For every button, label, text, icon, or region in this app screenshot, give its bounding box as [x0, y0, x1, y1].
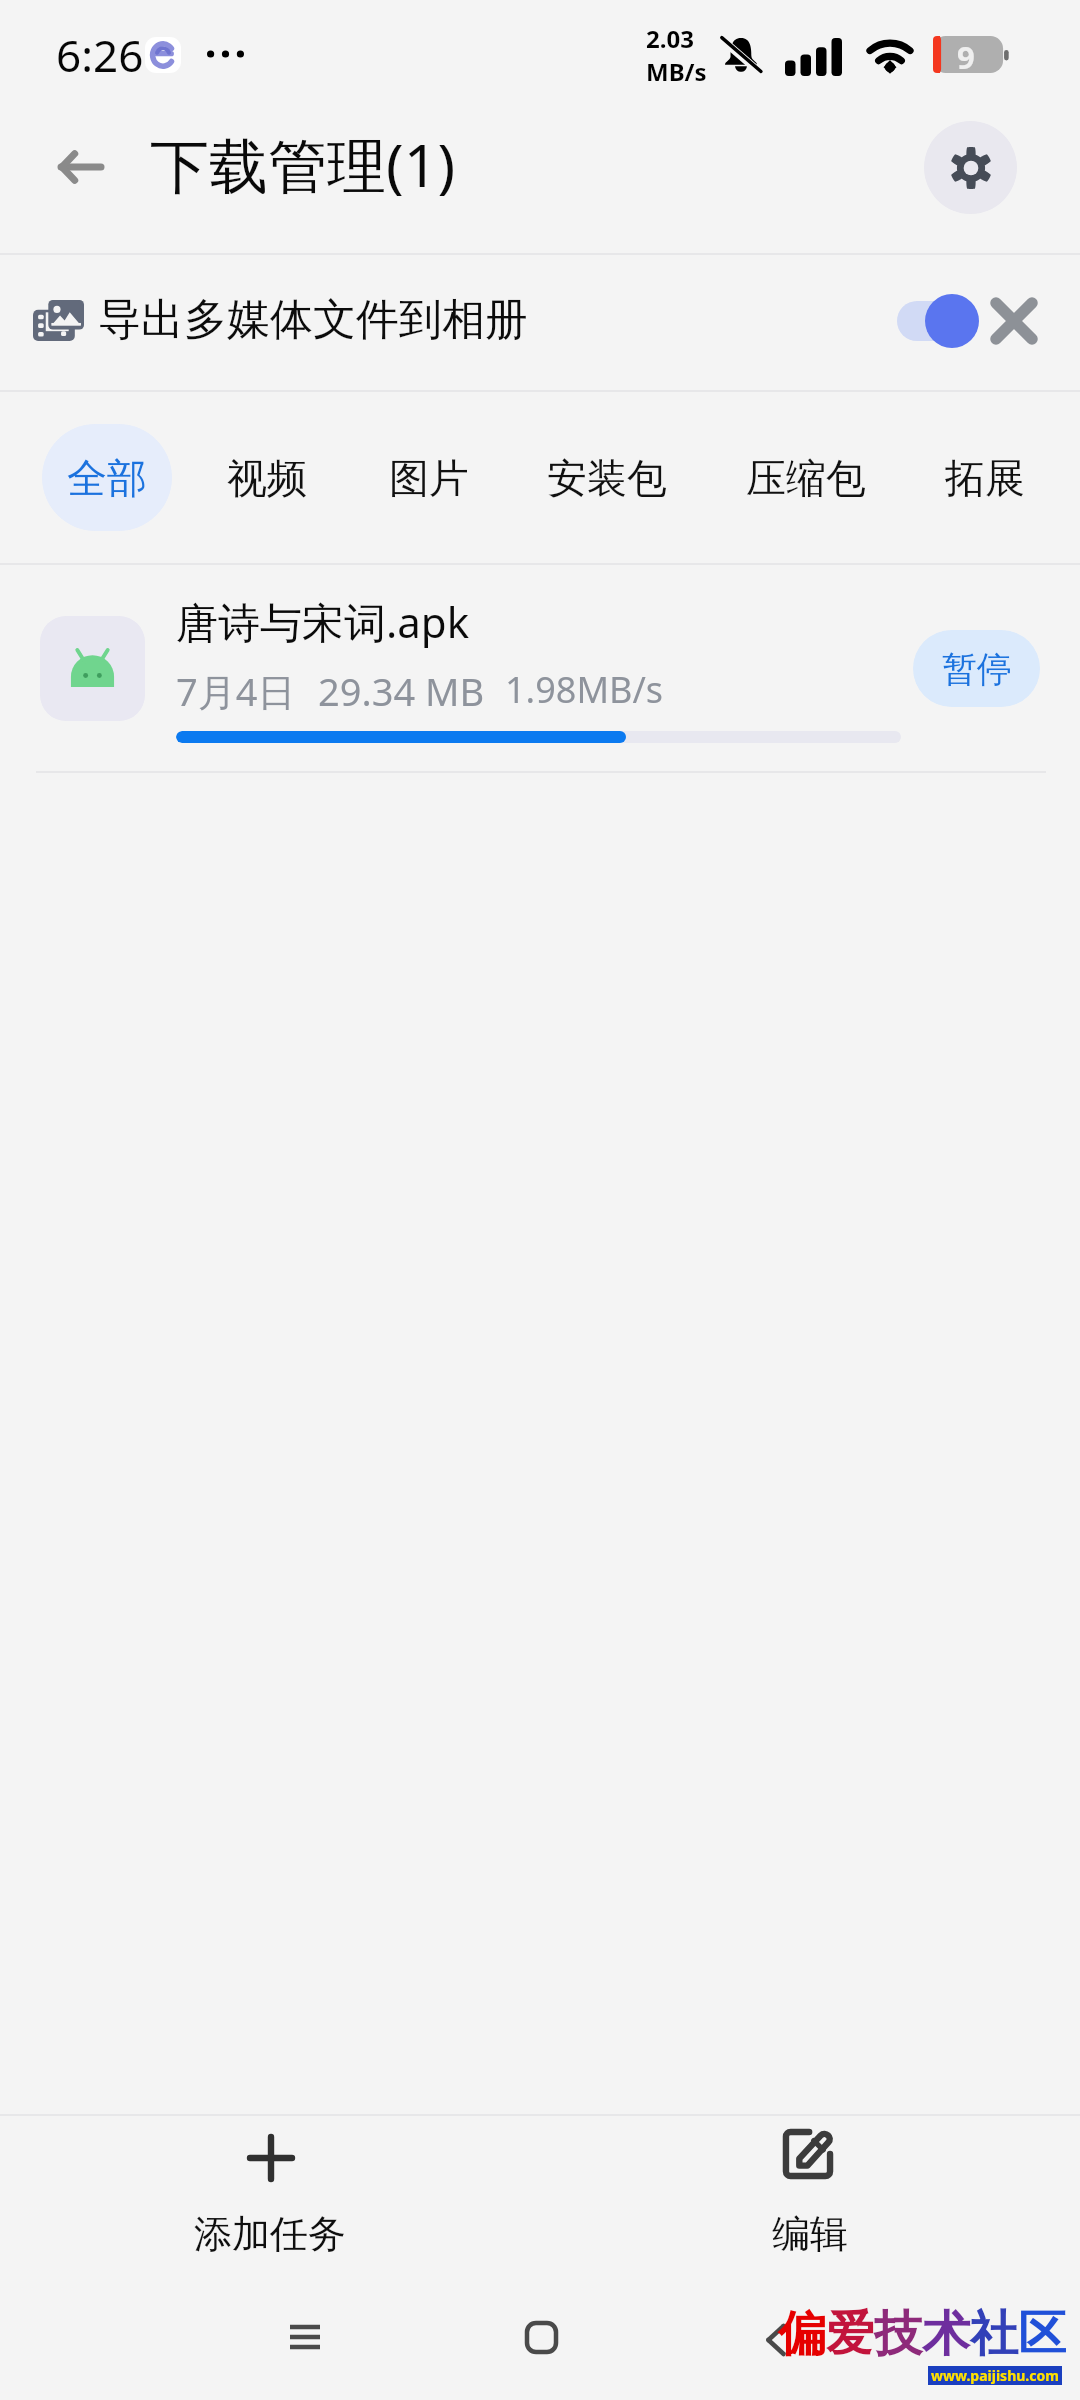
staticText: 下载管理(1): [150, 124, 456, 205]
button[interactable]: 全部: [42, 424, 172, 531]
staticText: 压缩包: [746, 453, 866, 503]
staticText: 暂停: [942, 647, 1012, 691]
staticText: 社: [970, 2304, 1018, 2364]
button[interactable]: Settings: [924, 121, 1017, 214]
staticText: 视频: [227, 453, 307, 503]
button[interactable]: Recent apps: [255, 2287, 355, 2387]
button[interactable]: 唐诗与宋词.apk: [0, 564, 1080, 772]
staticText: 2.03: [646, 22, 694, 55]
button[interactable]: 暂停: [913, 630, 1040, 707]
staticText: MB/s: [646, 55, 707, 88]
staticText: 6:26: [56, 25, 144, 85]
button[interactable]: 安装包: [527, 424, 687, 531]
staticText: 29.34 MB: [318, 665, 485, 717]
button[interactable]: Back: [726, 2290, 826, 2390]
staticText: 图片: [389, 453, 469, 503]
staticText: 安装包: [547, 453, 667, 503]
button[interactable]: 压缩包: [726, 424, 886, 531]
button[interactable]: 编辑: [600, 2115, 1020, 2300]
staticText: 拓展: [945, 453, 1025, 503]
staticText: 技: [874, 2304, 922, 2364]
staticText: 偏: [778, 2304, 826, 2364]
staticText: 导出多媒体文件到相册: [98, 293, 528, 347]
button[interactable]: 图片: [369, 424, 489, 531]
staticText: 唐诗与宋词.apk: [176, 593, 470, 650]
staticText: 7月4日: [176, 665, 296, 717]
staticText: 添加任务: [194, 2210, 346, 2258]
staticText: 9: [957, 36, 975, 73]
staticText: 术: [922, 2304, 970, 2364]
button[interactable]: Toggle export to album: [880, 281, 990, 361]
button[interactable]: Home: [491, 2287, 591, 2387]
button[interactable]: 添加任务: [60, 2115, 480, 2300]
staticText: 爱: [826, 2304, 874, 2364]
staticText: 全部: [67, 453, 147, 503]
staticText: 1.98MB/s: [505, 665, 664, 714]
staticText: www.paijishu.com: [931, 2366, 1059, 2385]
staticText: 区: [1018, 2304, 1066, 2364]
button[interactable]: Back: [38, 125, 122, 209]
button[interactable]: Close: [979, 286, 1049, 356]
button[interactable]: 视频: [207, 424, 327, 531]
button[interactable]: 拓展: [925, 424, 1045, 531]
staticText: 编辑: [772, 2210, 848, 2258]
